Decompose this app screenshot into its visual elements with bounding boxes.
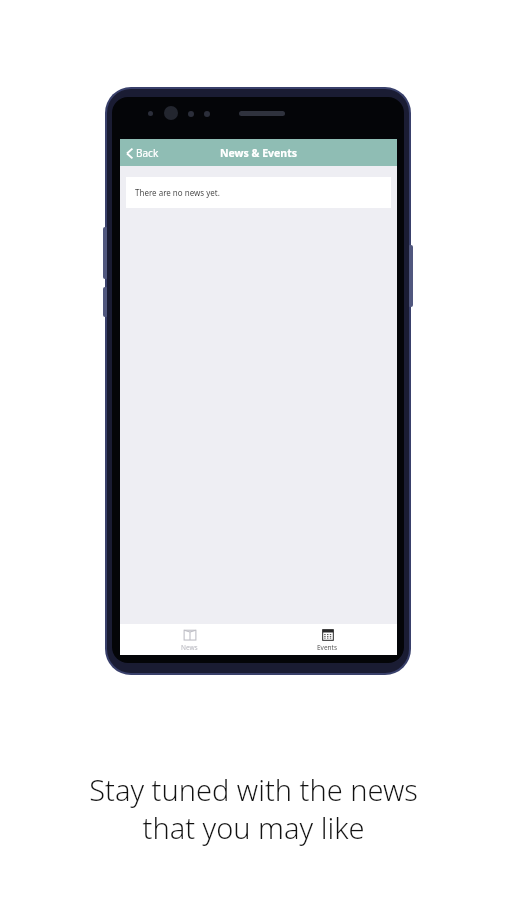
button[interactable]: Back (120, 143, 167, 163)
staticText: There are no news yet. (135, 187, 220, 198)
staticText: Back (136, 146, 159, 160)
staticText: News (181, 643, 198, 652)
staticText: Stay tuned with the news that you may li… (89, 770, 418, 847)
staticText: Events (317, 643, 338, 652)
button[interactable]: Events tab (303, 626, 352, 654)
button[interactable]: News tab (167, 626, 212, 654)
button[interactable]: There are no news yet. (126, 177, 391, 208)
staticText: News & Events (220, 146, 297, 160)
